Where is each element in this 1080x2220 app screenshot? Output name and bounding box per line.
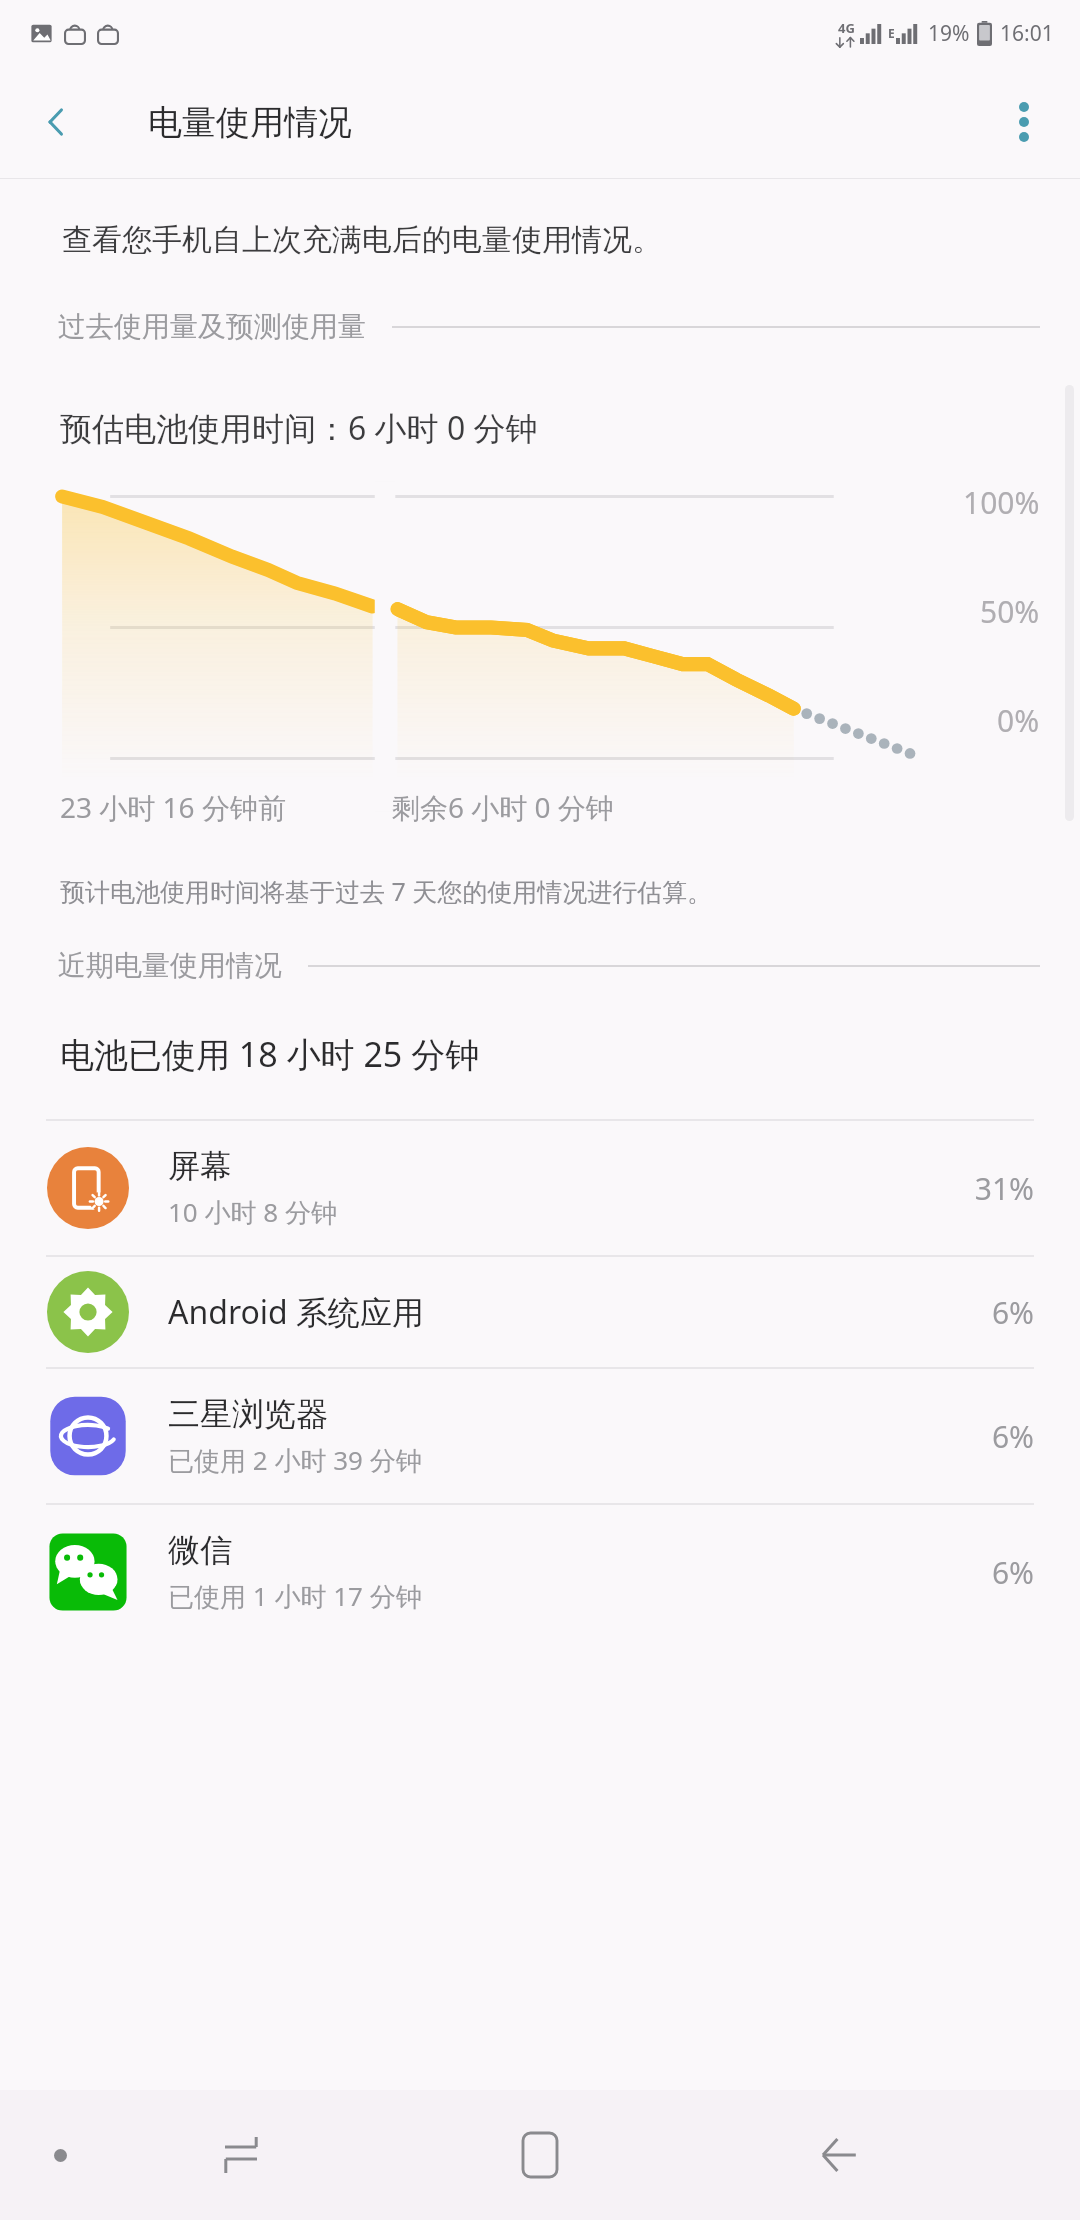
staticText: 屏幕 (168, 1146, 232, 1186)
staticText: Android 系统应用 (168, 1290, 425, 1334)
staticText: 剩余6 小时 0 分钟 (392, 788, 614, 826)
staticText: 查看您手机自上次充满电后的电量使用情况。 (62, 221, 662, 259)
staticText: 19% (928, 19, 970, 48)
staticText: 电池已使用 18 小时 25 分钟 (60, 1031, 480, 1077)
staticText: 6% (991, 1292, 1034, 1333)
staticText: 已使用 2 小时 39 分钟 (168, 1442, 422, 1478)
button[interactable]: Recents (193, 2107, 289, 2203)
button[interactable]: Home (492, 2107, 588, 2203)
staticText: 近期电量使用情况 (58, 948, 282, 983)
staticText: 6% (991, 1416, 1034, 1457)
staticText: 6% (991, 1552, 1034, 1593)
staticText: 31% (974, 1168, 1034, 1209)
button[interactable]: Back (791, 2107, 887, 2203)
staticText: 50% (980, 591, 1040, 632)
staticText: 三星浏览器 (168, 1394, 328, 1434)
staticText: E (888, 25, 895, 41)
staticText: 微信 (168, 1530, 232, 1570)
button[interactable]: Back (20, 86, 92, 158)
staticText: 预估电池使用时间：6 小时 0 分钟 (60, 406, 538, 450)
button[interactable]: 三星浏览器 (0, 1369, 1080, 1503)
staticText: 预计电池使用时间将基于过去 7 天您的使用情况进行估算。 (60, 874, 713, 908)
button[interactable]: 微信 (0, 1505, 1080, 1639)
staticText: 电量使用情况 (148, 101, 352, 144)
staticText: 已使用 1 小时 17 分钟 (168, 1578, 422, 1614)
staticText: 过去使用量及预测使用量 (58, 309, 366, 344)
button[interactable]: Keyboard indicator (20, 2115, 100, 2195)
button[interactable]: 屏幕 (0, 1121, 1080, 1255)
staticText: 0% (997, 700, 1040, 741)
button[interactable]: Android 系统应用 (0, 1257, 1080, 1367)
button[interactable]: More options (988, 86, 1060, 158)
staticText: 10 小时 8 分钟 (168, 1194, 337, 1230)
staticText: 100% (963, 482, 1040, 523)
staticText: 16:01 (1000, 19, 1054, 48)
staticText: 4G (838, 19, 855, 37)
staticText: 23 小时 16 分钟前 (60, 788, 286, 826)
